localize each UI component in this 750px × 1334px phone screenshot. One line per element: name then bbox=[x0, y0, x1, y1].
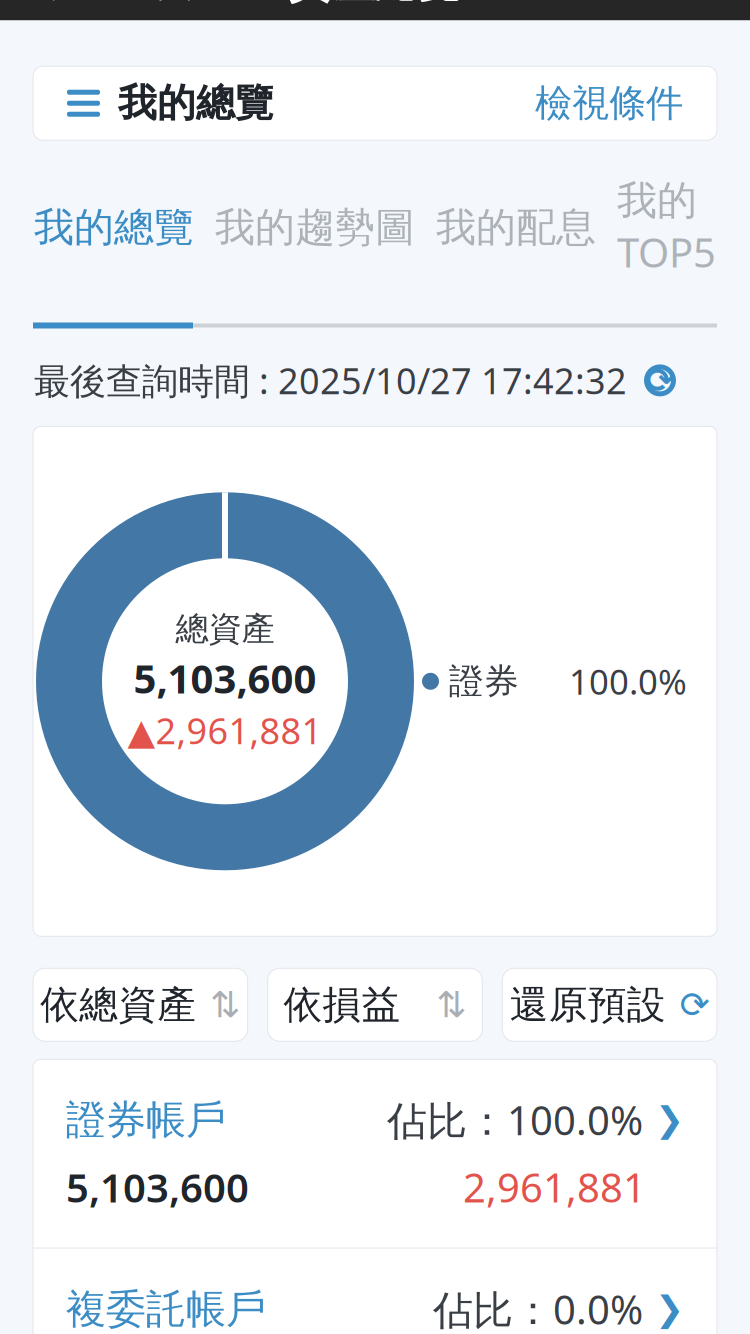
button[interactable]: 證券帳戶 bbox=[33, 1059, 717, 1247]
button[interactable]: 重新整理 bbox=[637, 357, 683, 403]
staticText: 5,103,600 bbox=[133, 651, 316, 704]
button[interactable]: e點通首頁 bbox=[22, 0, 202, 17]
staticText: 依損益 bbox=[283, 981, 400, 1028]
staticText: ❯ bbox=[655, 1289, 684, 1329]
staticText: 資產總覽 bbox=[289, 0, 461, 8]
staticText: 我的 TOP5 bbox=[617, 176, 716, 278]
button[interactable]: 我的 TOP5 bbox=[617, 162, 716, 292]
staticText: 依總資產 bbox=[40, 981, 196, 1028]
staticText: 100.0% bbox=[569, 658, 687, 704]
staticText: 證券帳戶 bbox=[66, 1095, 226, 1144]
staticText: 我的趨勢圖 bbox=[215, 203, 415, 252]
staticText: 我的總覽 bbox=[34, 203, 194, 252]
staticText: ⇅ bbox=[436, 984, 466, 1025]
staticText: 最後查詢時間 : 2025/10/27 17:42:32 bbox=[34, 356, 627, 404]
staticText: 複委託帳戶 bbox=[66, 1284, 266, 1334]
button[interactable]: 我的總覽 bbox=[34, 189, 194, 266]
staticText: 2,961,881 bbox=[463, 1160, 646, 1213]
staticText: ❯ bbox=[655, 1100, 684, 1139]
staticText: 總資產 bbox=[175, 608, 274, 649]
button[interactable]: 依總資產 bbox=[33, 968, 248, 1041]
button[interactable]: 還原預設 bbox=[502, 968, 717, 1041]
button[interactable]: 我的趨勢圖 bbox=[215, 189, 415, 266]
button[interactable]: 依損益 bbox=[268, 968, 482, 1041]
staticText: 還原預設 bbox=[510, 981, 666, 1028]
staticText: ▲2,961,881 bbox=[127, 706, 322, 754]
staticText: 證券 bbox=[449, 660, 519, 703]
staticText: e點通首頁 bbox=[32, 0, 192, 5]
button[interactable]: 複委託帳戶 bbox=[33, 1248, 717, 1334]
staticText: 我的配息 bbox=[436, 203, 596, 252]
staticText: 我的總覽 bbox=[118, 79, 274, 127]
button[interactable]: 我的配息 bbox=[436, 189, 596, 266]
staticText: ⟳ bbox=[645, 361, 674, 400]
staticText: 檢視條件 bbox=[535, 80, 683, 126]
staticText: 佔比：0.0% bbox=[433, 1282, 643, 1334]
staticText: ⇅ bbox=[210, 984, 240, 1025]
staticText: 5,103,600 bbox=[66, 1160, 249, 1213]
button[interactable]: 我的總覽 bbox=[33, 66, 717, 140]
staticText: 佔比：100.0% bbox=[387, 1093, 643, 1146]
staticText: ⟳ bbox=[680, 984, 710, 1025]
